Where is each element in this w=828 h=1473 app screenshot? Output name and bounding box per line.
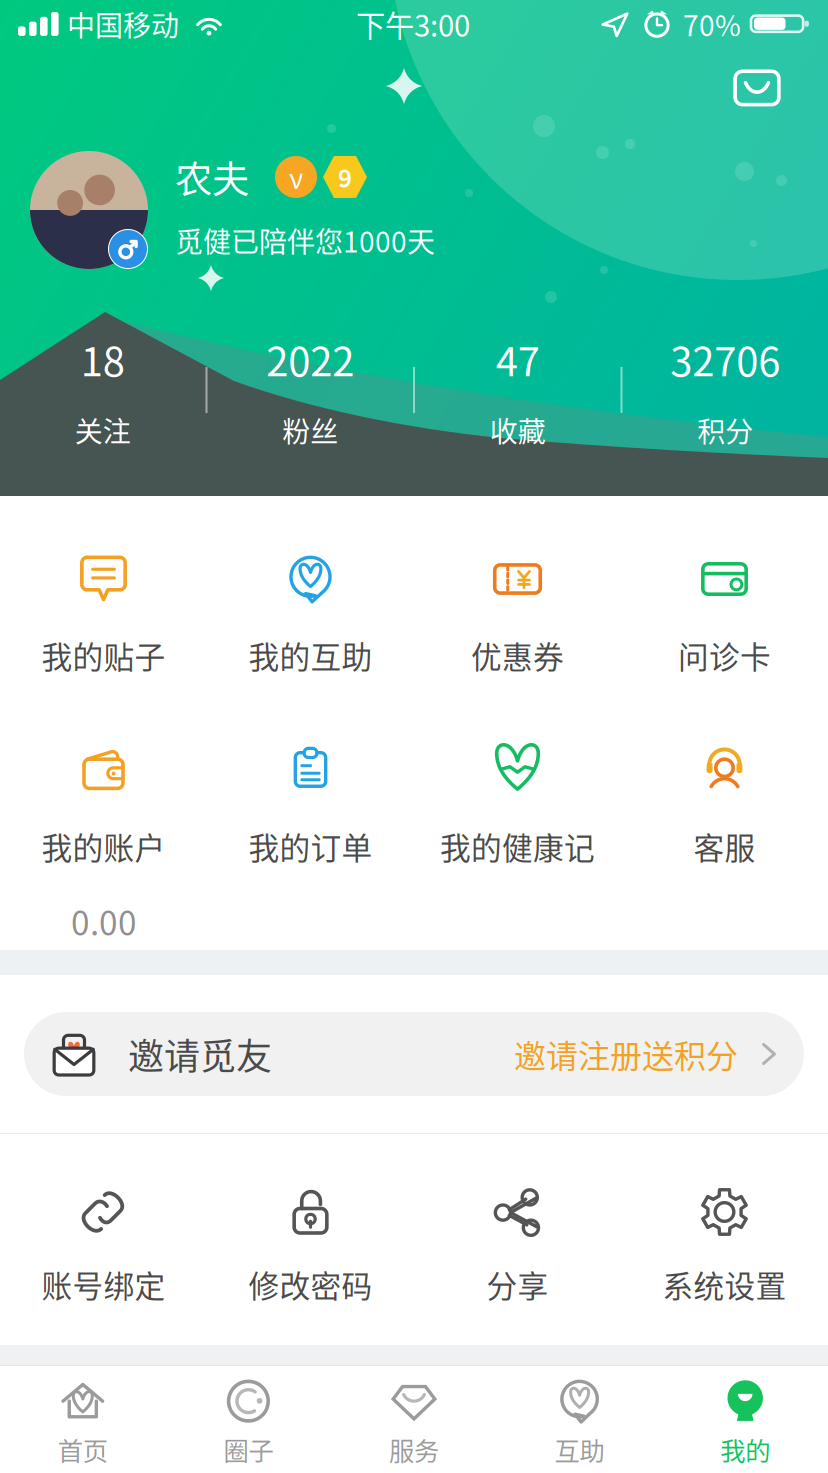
button[interactable]: 我的健康记 [414, 694, 621, 892]
staticText: 我的订单 [248, 824, 372, 868]
staticText: 47 [496, 330, 540, 388]
staticText: 圈子 [223, 1431, 273, 1468]
staticText: 0.00 [71, 897, 137, 945]
button[interactable]: 优惠券 [414, 496, 621, 694]
button[interactable]: 圈子 [166, 1366, 331, 1473]
button[interactable]: 修改密码 [207, 1134, 414, 1345]
staticText: 9 [338, 160, 352, 194]
staticText: 我的贴子 [41, 633, 165, 677]
staticText: 70% [683, 4, 741, 44]
button[interactable]: 分享 [414, 1134, 621, 1345]
staticText: 我的 [720, 1431, 770, 1468]
button[interactable]: 32706 [622, 336, 828, 444]
button[interactable]: 47 [415, 336, 620, 444]
staticText: 农夫 [175, 150, 249, 204]
button[interactable]: 客服 [621, 694, 828, 892]
staticText: 我的健康记 [440, 824, 595, 868]
staticText: 互助 [555, 1431, 605, 1468]
staticText: 18 [81, 330, 125, 388]
staticText: 我的账户 [41, 824, 165, 868]
staticText: 中国移动 [67, 4, 179, 44]
button[interactable]: 系统设置 [621, 1134, 828, 1345]
staticText: 优惠券 [471, 633, 564, 677]
button[interactable]: 我的订单 [207, 694, 414, 892]
button[interactable]: 互助 [497, 1366, 662, 1473]
staticText: ν [289, 158, 303, 196]
staticText: 我的互助 [248, 633, 372, 677]
staticText: 收藏 [490, 410, 546, 450]
button[interactable]: 服务 [331, 1366, 497, 1473]
button[interactable]: 邀请觅友 [0, 975, 828, 1133]
button[interactable]: 我的贴子 [0, 496, 207, 694]
staticText: 首页 [58, 1431, 108, 1468]
staticText: 粉丝 [282, 410, 338, 450]
staticText: 邀请觅友 [128, 1028, 272, 1080]
button[interactable]: 我的互助 [207, 496, 414, 694]
staticText: 客服 [693, 824, 755, 868]
staticText: 关注 [75, 410, 131, 450]
staticText: 系统设置 [662, 1262, 786, 1306]
button[interactable]: 问诊卡 [621, 496, 828, 694]
button[interactable]: 首页 [0, 1366, 166, 1473]
staticText: 32706 [670, 330, 780, 388]
button[interactable]: 2022 [207, 336, 413, 444]
staticText: 2022 [266, 330, 354, 388]
button[interactable]: 账号绑定 [0, 1134, 207, 1345]
staticText: 觅健已陪伴您1000天 [175, 220, 435, 260]
staticText: 积分 [697, 410, 753, 450]
staticText: 账号绑定 [41, 1262, 165, 1306]
button[interactable]: 我的 [662, 1366, 828, 1473]
staticText: 下午3:00 [356, 3, 470, 45]
staticText: 问诊卡 [678, 633, 771, 677]
button[interactable]: Messages [720, 56, 794, 118]
staticText: 邀请注册送积分 [514, 1031, 738, 1077]
staticText: 修改密码 [248, 1262, 372, 1306]
button[interactable]: 18 [0, 336, 205, 444]
staticText: 服务 [389, 1431, 439, 1468]
staticText: 分享 [486, 1262, 548, 1306]
button[interactable]: 我的账户 [0, 694, 207, 892]
